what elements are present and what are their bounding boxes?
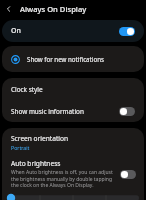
button[interactable]: Auto brightness (2, 156, 144, 193)
button[interactable]: Show music information (2, 100, 144, 122)
button[interactable]: Toggle off (120, 170, 136, 179)
staticText: On (11, 26, 21, 36)
staticText: Clock style (11, 85, 43, 94)
staticText: When Auto brightness is off, you can adj… (11, 169, 115, 189)
button[interactable]: Brightness slider (2, 196, 144, 200)
button[interactable]: Clock style (2, 78, 144, 100)
button[interactable]: Selected option (2, 46, 144, 72)
button[interactable]: Back (0, 0, 18, 18)
staticText: Portrait (11, 144, 30, 151)
staticText: Auto brightness (11, 159, 61, 168)
staticText: Show for new notifications (27, 55, 104, 63)
button[interactable]: Screen orientation (2, 128, 144, 156)
button[interactable]: On (2, 20, 144, 42)
staticText: Always On Display (20, 4, 87, 14)
button[interactable]: Toggle on (119, 27, 135, 36)
staticText: Show music information (11, 107, 84, 116)
button[interactable]: Selected option (11, 55, 20, 64)
button[interactable]: Toggle off (119, 107, 135, 116)
staticText: Screen orientation (11, 134, 69, 143)
